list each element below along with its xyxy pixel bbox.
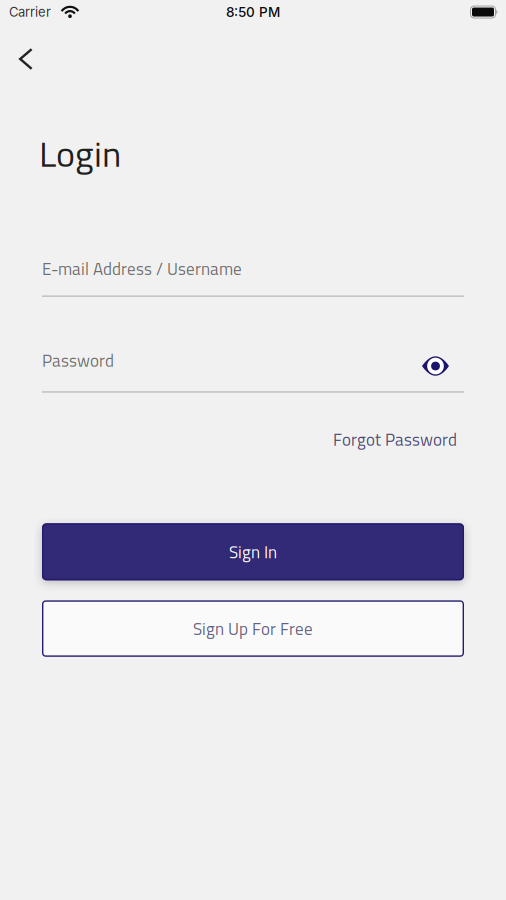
button[interactable]: Sign Up For Free: [42, 600, 464, 657]
staticText: Sign Up For Free: [193, 616, 313, 641]
staticText: Password: [42, 348, 114, 373]
staticText: 8:50 PM: [226, 4, 280, 20]
button[interactable]: Back: [0, 28, 33, 70]
button[interactable]: Forgot Password: [333, 426, 457, 452]
staticText: Carrier: [9, 4, 51, 20]
staticText: Sign In: [229, 539, 277, 565]
staticText: Forgot Password: [333, 426, 457, 452]
staticText: Login: [39, 126, 121, 181]
button[interactable]: Show password: [422, 356, 449, 375]
button[interactable]: Sign In: [42, 523, 464, 580]
staticText: E-mail Address / Username: [42, 256, 242, 282]
